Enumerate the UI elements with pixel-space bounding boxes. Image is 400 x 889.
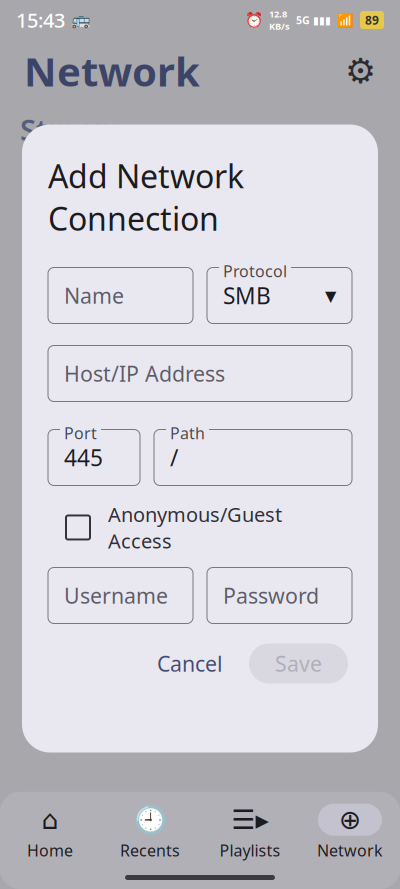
staticText: Password (223, 581, 319, 610)
staticText: 5G ▮▮▮ (296, 13, 331, 27)
staticText: Playlists (219, 840, 280, 861)
button[interactable]: Settings (345, 51, 376, 91)
staticText: SMB (223, 280, 271, 310)
staticText: / (170, 442, 178, 472)
button[interactable]: Cancel (141, 643, 239, 683)
staticText: Port (64, 422, 97, 444)
staticText: ☰▸ (231, 805, 268, 835)
staticText: Anonymous/Guest Access (108, 501, 282, 554)
staticText: ▾ (325, 283, 336, 308)
staticText: 🕘 (133, 804, 166, 835)
staticText: 🚌 (71, 11, 91, 29)
staticText: Protocol (223, 260, 287, 282)
button[interactable]: Save (249, 643, 348, 683)
staticText: Name (64, 281, 124, 310)
staticText: 89 (365, 12, 379, 28)
staticText: Network (24, 44, 200, 97)
staticText: Username (64, 581, 168, 610)
button[interactable]: ⌂ (0, 804, 100, 861)
staticText: Recents (120, 840, 180, 861)
staticText: 📶 (337, 12, 354, 28)
staticText: 445 (64, 442, 103, 472)
staticText: Path (170, 422, 205, 444)
staticText: ⌂ (41, 805, 58, 835)
staticText: Cancel (157, 649, 223, 678)
staticText: 12.8 KB/s (269, 8, 290, 32)
staticText: Save (275, 649, 322, 678)
button[interactable]: ☰▸ (200, 804, 300, 861)
staticText: Network (317, 840, 383, 861)
staticText: Host/IP Address (64, 359, 225, 388)
staticText: Add Network Connection (48, 154, 244, 239)
staticText: ⚙ (345, 51, 376, 91)
button[interactable]: Anonymous/Guest Access (48, 505, 352, 549)
staticText: Stream · · · (20, 110, 170, 149)
staticText: ⊕ (339, 805, 361, 835)
staticText: ⏰ (245, 12, 263, 28)
button[interactable]: 🕘 (100, 804, 200, 861)
button[interactable]: ⊕ (300, 804, 400, 861)
staticText: 15:43 (16, 7, 65, 33)
staticText: Home (27, 840, 73, 861)
